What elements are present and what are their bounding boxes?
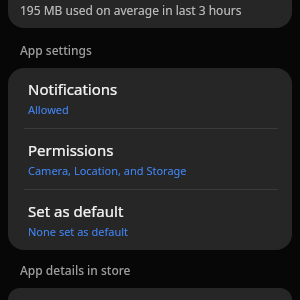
staticText: None set as default	[28, 224, 129, 239]
staticText: 195 MB used on average in last 3 hours	[20, 2, 242, 18]
staticText: App settings	[20, 42, 92, 58]
button[interactable]: Notifications	[8, 68, 292, 129]
button[interactable]: Set as default	[8, 190, 292, 250]
button[interactable]: Permissions	[8, 129, 292, 190]
staticText: Notifications	[28, 79, 118, 99]
button[interactable]: 195 MB used on average in last 3 hours	[8, 0, 292, 28]
staticText: Set as default	[28, 201, 124, 221]
button[interactable]: App details in store	[8, 288, 292, 300]
staticText: Permissions	[28, 140, 114, 160]
staticText: Allowed	[28, 102, 69, 117]
staticText: Camera, Location, and Storage	[28, 163, 187, 178]
staticText: App details in store	[20, 262, 131, 278]
